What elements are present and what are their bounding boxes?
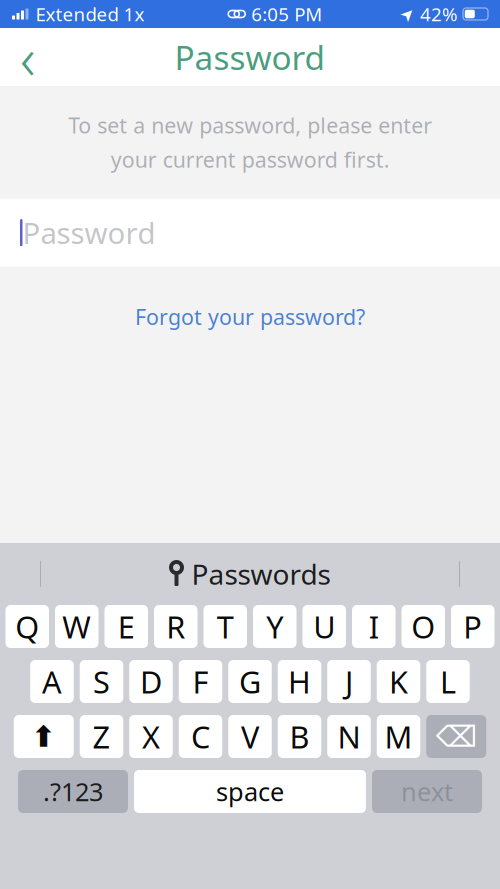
- staticText: Forgot your password?: [135, 303, 365, 331]
- button[interactable]: Forgot your password?: [115, 291, 385, 343]
- button[interactable]: X: [129, 715, 173, 758]
- button[interactable]: Z: [80, 715, 123, 758]
- button[interactable]: Q: [5, 605, 49, 648]
- staticText: To set a new password, please enter your…: [68, 111, 432, 174]
- button[interactable]: H: [278, 660, 321, 703]
- button[interactable]: .?123: [18, 770, 128, 813]
- staticText: space: [216, 775, 284, 808]
- button[interactable]: P: [451, 605, 494, 648]
- staticText: Z: [92, 716, 110, 757]
- button[interactable]: M: [377, 715, 420, 758]
- staticText: P: [463, 606, 482, 647]
- button[interactable]: L: [426, 660, 470, 703]
- button[interactable]: next: [372, 770, 482, 813]
- staticText: Y: [266, 606, 283, 647]
- staticText: Passwords: [191, 555, 330, 593]
- button[interactable]: Password: [0, 199, 500, 267]
- button[interactable]: A: [30, 660, 74, 703]
- button[interactable]: N: [327, 715, 371, 758]
- staticText: L: [440, 661, 456, 702]
- button[interactable]: K: [377, 660, 420, 703]
- staticText: E: [118, 606, 135, 647]
- staticText: 42%: [420, 2, 458, 26]
- staticText: J: [345, 661, 353, 702]
- staticText: C: [191, 716, 210, 757]
- staticText: .?123: [43, 775, 103, 808]
- button[interactable]: U: [302, 605, 346, 648]
- staticText: ⬆: [31, 720, 56, 753]
- button[interactable]: Back: [0, 29, 56, 85]
- button[interactable]: J: [327, 660, 371, 703]
- button[interactable]: F: [179, 660, 222, 703]
- button[interactable]: C: [179, 715, 222, 758]
- staticText: S: [93, 661, 110, 702]
- button[interactable]: E: [104, 605, 148, 648]
- staticText: V: [241, 716, 259, 757]
- staticText: B: [289, 716, 309, 757]
- button[interactable]: space: [134, 770, 366, 813]
- button[interactable]: B: [278, 715, 321, 758]
- staticText: U: [313, 606, 335, 647]
- button[interactable]: Passwords: [159, 554, 340, 594]
- staticText: ‹: [20, 18, 36, 96]
- button[interactable]: W: [55, 605, 98, 648]
- button[interactable]: T: [203, 605, 247, 648]
- staticText: N: [337, 716, 360, 757]
- staticText: X: [142, 716, 160, 757]
- button[interactable]: G: [228, 660, 272, 703]
- staticText: M: [384, 716, 412, 757]
- button[interactable]: Delete: [426, 715, 486, 758]
- staticText: ➤: [400, 4, 415, 24]
- staticText: I: [369, 606, 379, 647]
- staticText: A: [42, 661, 62, 702]
- staticText: O: [411, 606, 435, 647]
- staticText: Q: [15, 606, 39, 647]
- staticText: next: [401, 775, 453, 808]
- button[interactable]: V: [228, 715, 272, 758]
- button[interactable]: Shift: [14, 715, 74, 758]
- staticText: T: [217, 606, 234, 647]
- staticText: F: [192, 661, 208, 702]
- button[interactable]: D: [129, 660, 173, 703]
- staticText: H: [288, 661, 311, 702]
- button[interactable]: S: [80, 660, 123, 703]
- staticText: R: [166, 606, 185, 647]
- button[interactable]: O: [401, 605, 445, 648]
- button[interactable]: I: [352, 605, 395, 648]
- staticText: ⌫: [436, 720, 477, 753]
- staticText: Extended 1x: [30, 2, 144, 26]
- button[interactable]: Y: [253, 605, 296, 648]
- staticText: G: [239, 661, 261, 702]
- staticText: Password: [22, 213, 155, 252]
- button[interactable]: R: [154, 605, 197, 648]
- staticText: D: [140, 661, 162, 702]
- staticText: Password: [174, 35, 325, 79]
- staticText: W: [62, 606, 91, 647]
- staticText: K: [389, 661, 408, 702]
- staticText: 6:05 PM: [251, 2, 322, 26]
